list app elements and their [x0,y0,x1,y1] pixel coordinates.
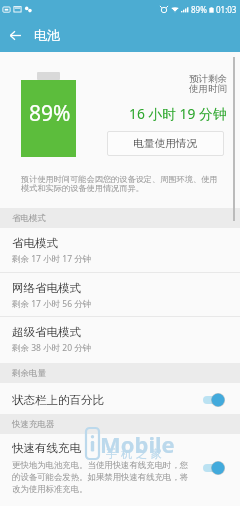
staticText: 电量使用情况 [133,137,198,150]
staticText: 剩余电量 [12,368,46,379]
button[interactable]: 状态栏上的百分比 [0,384,240,415]
staticText: 省电模式 [12,236,58,250]
staticText: 状态栏上的百分比 [12,393,203,407]
staticText: 电池 [34,27,60,43]
button[interactable]: 快速有线充电 [0,435,240,500]
staticText: 手机之家 [104,447,164,461]
staticText: 超级省电模式 [12,325,81,339]
staticText: 16 小时 19 分钟 [129,104,227,123]
staticText: 快速充电器 [12,419,55,430]
button[interactable]: 电量使用情况 [107,131,224,156]
staticText: 剩余 17 小时 17 分钟 [12,253,92,265]
staticText: 省电模式 [12,213,46,224]
staticText: 快速有线充电 [12,441,81,455]
staticText: 预计剩余 使用时间 [189,73,227,95]
staticText: 剩余 17 小时 56 分钟 [12,298,92,310]
button[interactable]: 网络省电模式 [0,273,240,317]
staticText: 89% [29,99,71,128]
staticText: 01:03 [216,4,237,15]
staticText: Mobile [100,429,175,459]
staticText: 预计使用时间可能会因您的设备设定、周围环境、使用 模式和实际的设备使用情况而异。 [21,174,218,194]
staticText: 网络省电模式 [12,281,81,295]
button[interactable]: 超级省电模式 [0,317,240,361]
button[interactable]: 省电模式 [0,228,240,272]
staticText: 剩余 38 小时 20 分钟 [12,342,92,354]
button[interactable]: Back [0,18,30,52]
staticText: 更快地为电池充电。当使用快速有线充电时，您 的设备可能会发热。如果禁用快速有线充… [12,460,189,494]
staticText: 89% [191,4,207,15]
